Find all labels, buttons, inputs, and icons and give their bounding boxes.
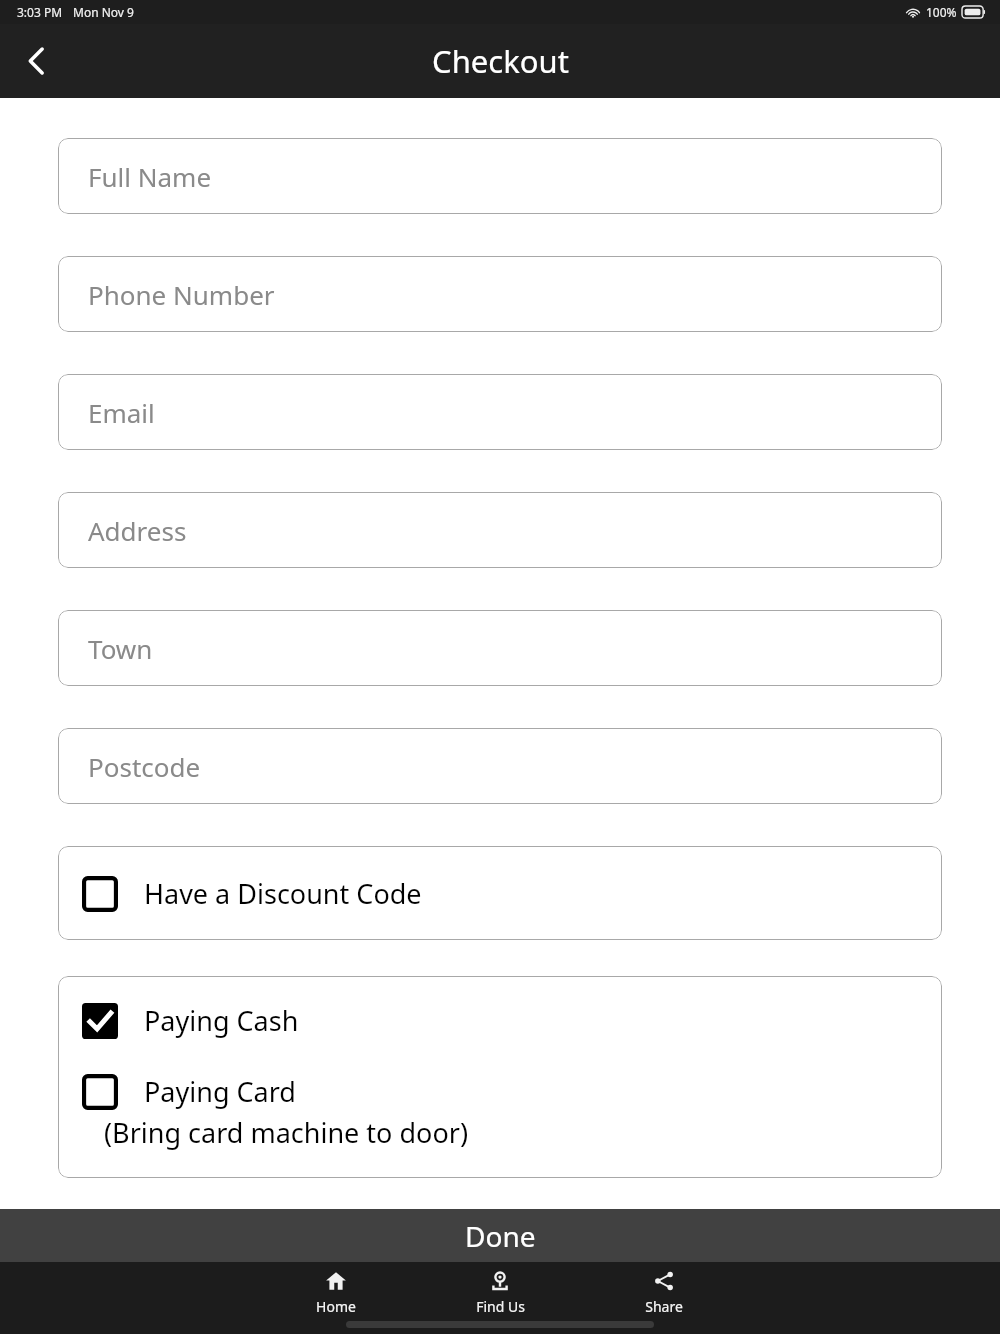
staticText: Find Us xyxy=(476,1297,525,1316)
staticText: Done xyxy=(465,1217,536,1255)
button[interactable]: Paying Card xyxy=(58,1073,942,1151)
staticText: Paying Card xyxy=(144,1073,296,1110)
staticText: Paying Cash xyxy=(144,1002,299,1039)
button[interactable]: Address xyxy=(58,492,942,568)
button[interactable]: Have a Discount Code xyxy=(58,846,942,940)
staticText: Email xyxy=(88,395,155,430)
button[interactable]: Share xyxy=(632,1270,696,1316)
staticText: Town xyxy=(88,631,153,666)
staticText: 3:03 PM xyxy=(17,4,63,20)
button[interactable]: Back xyxy=(8,33,64,89)
button[interactable]: Phone Number xyxy=(58,256,942,332)
button[interactable]: Postcode xyxy=(58,728,942,804)
button[interactable]: Email xyxy=(58,374,942,450)
button[interactable]: Full Name xyxy=(58,138,942,214)
button[interactable]: Done xyxy=(0,1209,1000,1262)
staticText: Mon Nov 9 xyxy=(73,4,134,20)
staticText: Share xyxy=(645,1297,683,1316)
button[interactable]: Find Us xyxy=(468,1270,532,1316)
staticText: Home xyxy=(316,1297,356,1316)
staticText: Full Name xyxy=(88,159,212,194)
staticText: 100% xyxy=(926,4,957,20)
staticText: Phone Number xyxy=(88,277,275,312)
staticText: Address xyxy=(88,513,187,548)
staticText: Postcode xyxy=(88,749,201,784)
staticText: Have a Discount Code xyxy=(144,875,422,912)
button[interactable]: Home xyxy=(304,1270,368,1316)
staticText: Checkout xyxy=(432,40,569,82)
staticText: (Bring card machine to door) xyxy=(104,1114,468,1151)
button[interactable]: Town xyxy=(58,610,942,686)
button[interactable]: Paying Cash xyxy=(58,1002,942,1039)
